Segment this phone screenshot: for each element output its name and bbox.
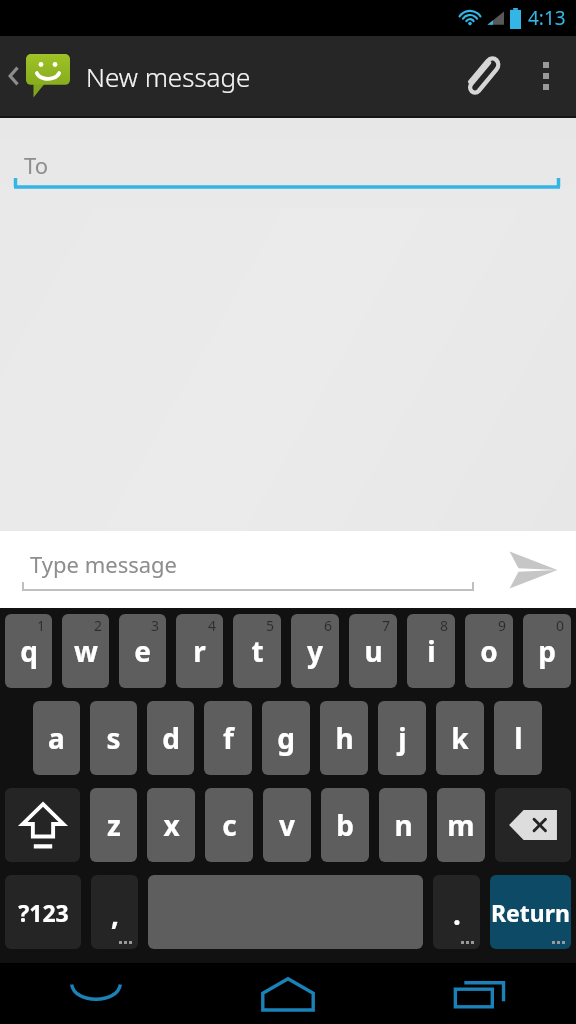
staticText: c	[222, 806, 237, 844]
staticText: w	[74, 632, 98, 670]
staticText: New message	[86, 59, 251, 94]
button[interactable]: d	[147, 701, 194, 775]
staticText: b	[336, 806, 354, 844]
button[interactable]: Type message	[22, 549, 490, 591]
button[interactable]: v	[263, 788, 311, 862]
staticText: o	[480, 632, 498, 670]
staticText: 7	[382, 616, 391, 635]
staticText: 8	[440, 616, 449, 635]
staticText: i	[427, 632, 436, 670]
button[interactable]: z	[90, 788, 137, 862]
staticText: r	[193, 632, 206, 670]
button[interactable]: j	[378, 701, 426, 775]
staticText: m	[447, 806, 475, 844]
button[interactable]: y	[291, 614, 339, 688]
button[interactable]: x	[147, 788, 195, 862]
staticText: 3	[151, 616, 160, 635]
staticText: k	[451, 719, 469, 757]
staticText: t	[251, 632, 264, 670]
button[interactable]: Shift	[5, 788, 80, 862]
button[interactable]: .	[433, 875, 480, 949]
staticText: Return	[491, 897, 570, 928]
button[interactable]: Return	[490, 875, 571, 949]
button[interactable]	[0, 54, 74, 98]
staticText: y	[307, 632, 323, 670]
button[interactable]: ,	[91, 875, 138, 949]
button[interactable]: Backspace	[495, 788, 571, 862]
staticText: p	[538, 632, 556, 670]
button[interactable]: e	[119, 614, 166, 688]
staticText: d	[162, 719, 180, 757]
button[interactable]: Home	[192, 963, 384, 1024]
staticText: ,	[111, 895, 119, 933]
staticText: f	[223, 719, 234, 757]
button[interactable]: l	[494, 701, 542, 775]
staticText: To	[24, 150, 49, 180]
staticText: 0	[556, 616, 565, 635]
button[interactable]: More options	[516, 36, 576, 116]
button[interactable]: a	[33, 701, 80, 775]
staticText: h	[335, 719, 354, 757]
button[interactable]: Back	[0, 963, 192, 1024]
button[interactable]: s	[90, 701, 137, 775]
button[interactable]: t	[233, 614, 281, 688]
staticText: l	[514, 719, 523, 757]
button[interactable]: g	[262, 701, 310, 775]
button[interactable]: r	[176, 614, 223, 688]
staticText: x	[163, 806, 180, 844]
staticText: ?123	[18, 897, 69, 928]
staticText: e	[134, 632, 151, 670]
button[interactable]: o	[465, 614, 513, 688]
staticText: u	[364, 632, 383, 670]
staticText: 4:13	[528, 5, 566, 31]
staticText: s	[106, 719, 121, 757]
button[interactable]: To	[14, 150, 560, 190]
button[interactable]: i	[407, 614, 455, 688]
button[interactable]: h	[320, 701, 368, 775]
button[interactable]: Recent apps	[384, 963, 576, 1024]
staticText: 9	[498, 616, 507, 635]
staticText: 5	[266, 616, 275, 635]
button[interactable]: u	[349, 614, 397, 688]
staticText: 4	[208, 616, 217, 635]
staticText: q	[20, 632, 38, 670]
button[interactable]: f	[204, 701, 252, 775]
staticText: Type message	[30, 549, 178, 579]
staticText: v	[279, 806, 295, 844]
staticText: z	[107, 806, 121, 844]
button[interactable]: ?123	[5, 875, 81, 949]
button[interactable]: n	[379, 788, 427, 862]
button[interactable]: p	[523, 614, 571, 688]
staticText: g	[277, 719, 295, 757]
staticText: .	[453, 895, 461, 933]
button[interactable]: b	[321, 788, 369, 862]
button[interactable]: Send	[490, 531, 576, 608]
button[interactable]: q	[5, 614, 52, 688]
staticText: a	[48, 719, 65, 757]
button[interactable]: w	[62, 614, 109, 688]
staticText: 6	[324, 616, 333, 635]
staticText: n	[394, 806, 413, 844]
button[interactable]: m	[437, 788, 485, 862]
staticText: j	[398, 719, 407, 757]
button[interactable]: k	[436, 701, 484, 775]
button[interactable]: Attach	[444, 36, 516, 116]
staticText: 2	[94, 616, 103, 635]
staticText: 1	[37, 616, 46, 635]
button[interactable]: c	[205, 788, 253, 862]
